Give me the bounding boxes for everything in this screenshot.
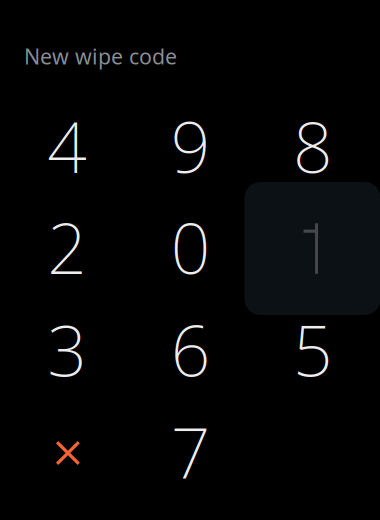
button[interactable]: 0 (129, 196, 252, 297)
staticText: 2 (47, 201, 87, 293)
button[interactable]: 3 (6, 299, 129, 400)
staticText: New wipe code (24, 42, 177, 70)
staticText: 5 (293, 303, 333, 396)
button[interactable]: 9 (129, 95, 252, 196)
button[interactable]: 5 (251, 299, 374, 400)
button[interactable]: 2 (6, 196, 129, 297)
button[interactable]: 1 (251, 196, 374, 297)
staticText: 6 (171, 303, 211, 396)
staticText: 7 (171, 405, 211, 498)
button[interactable]: 4 (6, 95, 129, 196)
button[interactable]: 8 (251, 95, 374, 196)
staticText: 0 (171, 201, 211, 293)
staticText: 3 (47, 303, 87, 396)
button[interactable]: 6 (129, 299, 252, 400)
button[interactable]: Delete (6, 402, 129, 503)
staticText: 8 (293, 100, 333, 192)
staticText: 4 (47, 100, 87, 192)
button[interactable]: 7 (129, 401, 252, 502)
staticText: 9 (171, 100, 211, 192)
